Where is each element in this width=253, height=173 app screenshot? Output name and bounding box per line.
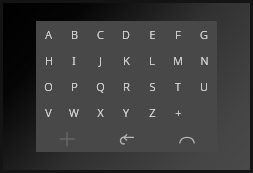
button[interactable]: E (139, 21, 165, 47)
button[interactable]: T (165, 73, 191, 99)
button[interactable]: Y (113, 99, 139, 125)
staticText: B (71, 27, 78, 42)
button[interactable]: L (139, 47, 165, 73)
button[interactable]: J (87, 47, 113, 73)
button[interactable]: S (139, 73, 165, 99)
button[interactable]: U (191, 73, 217, 99)
button[interactable]: C (87, 21, 113, 47)
staticText: Q (96, 79, 105, 94)
button[interactable]: G (191, 21, 217, 47)
staticText: V (45, 105, 52, 120)
button[interactable]: V (36, 99, 61, 125)
button[interactable]: Add (36, 125, 97, 152)
staticText: T (175, 79, 181, 94)
staticText: U (200, 79, 208, 94)
button[interactable]: A (36, 21, 61, 47)
staticText: W (69, 105, 79, 120)
staticText: J (99, 53, 102, 68)
button[interactable]: B (61, 21, 87, 47)
button[interactable]: R (113, 73, 139, 99)
button[interactable]: Q (87, 73, 113, 99)
staticText: G (200, 27, 208, 42)
staticText: S (149, 79, 156, 94)
staticText: X (97, 105, 104, 120)
staticText: E (149, 27, 156, 42)
staticText: I (72, 53, 76, 68)
staticText: + (175, 105, 182, 120)
button[interactable]: P (61, 73, 87, 99)
staticText: O (44, 79, 53, 94)
button[interactable]: Backspace (97, 125, 157, 152)
staticText: R (123, 79, 130, 94)
staticText: M (173, 53, 183, 68)
staticText: Z (149, 105, 156, 120)
button[interactable]: F (165, 21, 191, 47)
staticText: C (97, 27, 104, 42)
staticText: A (45, 27, 52, 42)
staticText: P (71, 79, 78, 94)
staticText: L (149, 53, 155, 68)
button[interactable]: W (61, 99, 87, 125)
button[interactable]: D (113, 21, 139, 47)
button[interactable]: + (165, 99, 191, 125)
button[interactable]: Home (157, 125, 217, 152)
staticText: Y (123, 105, 129, 120)
button[interactable]: N (191, 47, 217, 73)
staticText: N (200, 53, 209, 68)
button[interactable]: I (61, 47, 87, 73)
button[interactable]: M (165, 47, 191, 73)
button[interactable]: H (36, 47, 61, 73)
button[interactable]: O (36, 73, 61, 99)
button[interactable]: K (113, 47, 139, 73)
staticText: D (122, 27, 130, 42)
staticText: K (123, 53, 130, 68)
staticText: F (175, 27, 181, 42)
button[interactable]: Z (139, 99, 165, 125)
staticText: H (45, 53, 53, 68)
button[interactable]: X (87, 99, 113, 125)
